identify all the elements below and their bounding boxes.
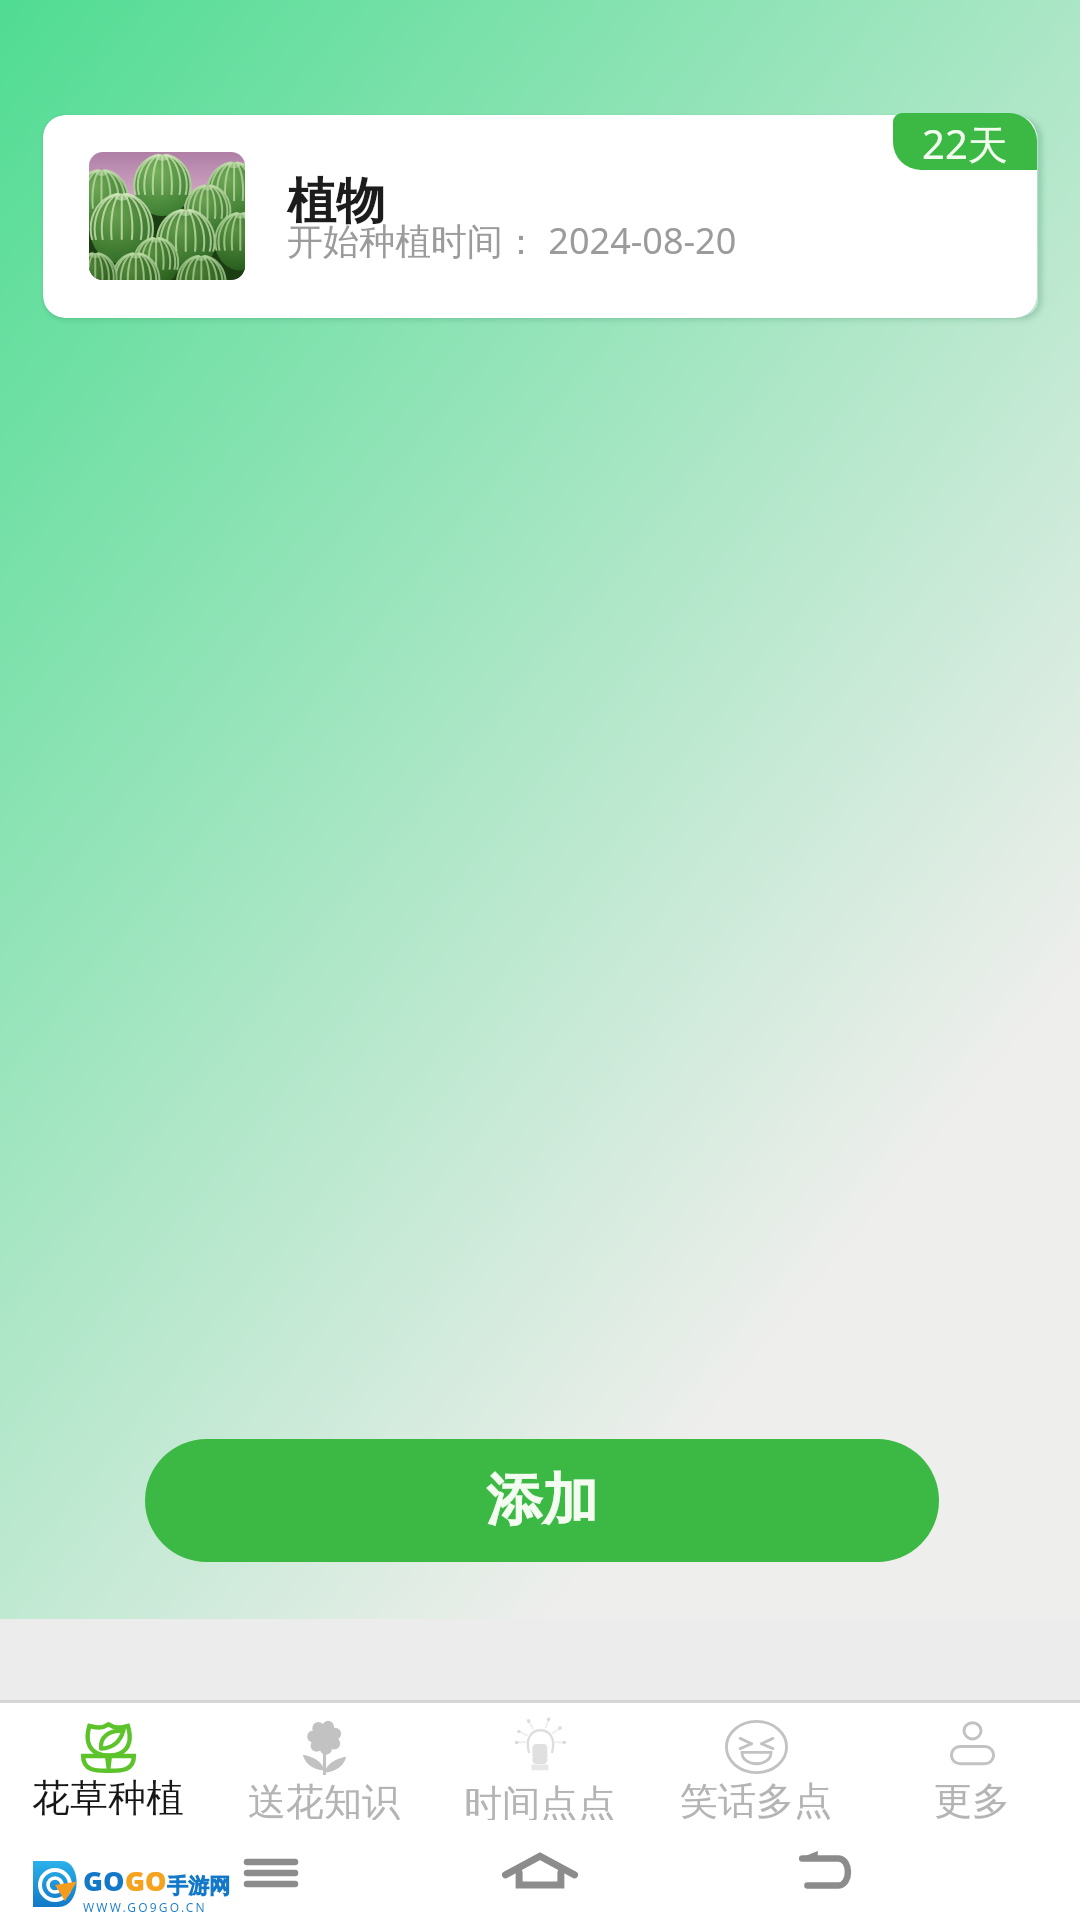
staticText: 22天 (922, 116, 1008, 170)
staticText: 更多 (934, 1777, 1010, 1820)
staticText: 时间点点 (464, 1780, 616, 1820)
staticText: 笑话多点 (680, 1777, 832, 1820)
staticText: 手游网 (167, 1873, 230, 1899)
button[interactable]: Back (787, 1844, 859, 1900)
button[interactable]: 更多 (864, 1703, 1080, 1820)
staticText: 花草种植 (32, 1774, 184, 1820)
staticText: GO (125, 1862, 167, 1899)
staticText: 送花知识 (248, 1778, 400, 1820)
button[interactable]: 植物 (43, 115, 1037, 318)
staticText: 植物 (287, 171, 385, 233)
button[interactable]: 送花知识 (216, 1703, 432, 1820)
staticText: 开始种植时间： 2024-08-20 (287, 216, 737, 265)
button[interactable]: Home (504, 1844, 576, 1900)
staticText: WWW.GO9GO.CN (83, 1899, 207, 1912)
button[interactable]: Menu (235, 1845, 307, 1901)
staticText: GO (83, 1862, 125, 1899)
button[interactable]: 笑话多点 (648, 1703, 864, 1820)
staticText: 添加 (486, 1465, 598, 1536)
button[interactable]: 时间点点 (432, 1703, 648, 1820)
button[interactable]: 22天 (893, 113, 1037, 170)
button[interactable]: 花草种植 (0, 1703, 216, 1820)
button[interactable]: 添加 (145, 1439, 939, 1562)
